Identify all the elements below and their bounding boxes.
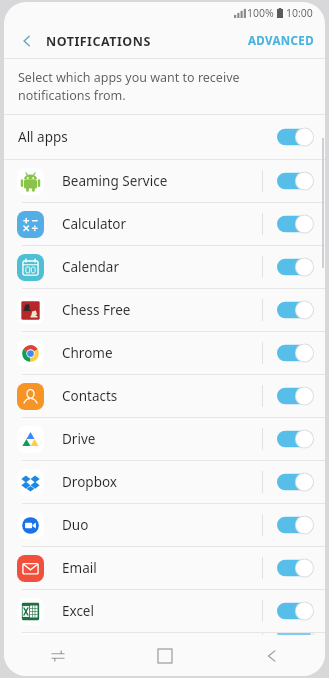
staticText: Chess Free bbox=[62, 301, 131, 319]
button[interactable]: Excel bbox=[4, 590, 325, 632]
button[interactable]: Toggle notifications bbox=[277, 299, 313, 321]
button[interactable]: Dropbox bbox=[4, 461, 325, 503]
button[interactable]: Toggle notifications bbox=[277, 600, 313, 622]
staticText: 10:00 bbox=[286, 6, 313, 20]
staticText: Duo bbox=[62, 516, 89, 534]
button[interactable]: Toggle notifications bbox=[277, 428, 313, 450]
button[interactable]: Recents bbox=[4, 635, 111, 676]
button[interactable]: Home bbox=[111, 635, 218, 676]
staticText: Beaming Service bbox=[62, 172, 168, 190]
button[interactable]: Contacts bbox=[4, 375, 325, 417]
button[interactable]: Toggle notifications bbox=[277, 342, 313, 364]
button[interactable]: Back bbox=[12, 26, 42, 56]
button[interactable]: ADVANCED bbox=[238, 27, 325, 55]
staticText: 100% bbox=[247, 6, 274, 20]
button[interactable]: Toggle notifications bbox=[277, 471, 313, 493]
button[interactable]: All apps bbox=[4, 115, 325, 159]
button[interactable]: Email bbox=[4, 547, 325, 589]
staticText: Chrome bbox=[62, 344, 113, 362]
staticText: ADVANCED bbox=[248, 33, 315, 49]
button[interactable]: Toggle notifications bbox=[277, 126, 313, 148]
button[interactable]: Toggle notifications bbox=[277, 633, 313, 635]
button[interactable]: Toggle notifications bbox=[277, 256, 313, 278]
staticText: All apps bbox=[18, 128, 68, 146]
staticText: NOTIFICATIONS bbox=[46, 33, 151, 50]
staticText: Calendar bbox=[62, 258, 119, 276]
button[interactable]: Toggle notifications bbox=[277, 514, 313, 536]
button[interactable]: Toggle notifications bbox=[277, 385, 313, 407]
staticText: Email bbox=[62, 559, 97, 577]
button[interactable]: Chess Free bbox=[4, 289, 325, 331]
staticText: Dropbox bbox=[62, 473, 117, 491]
button[interactable]: Toggle notifications bbox=[277, 170, 313, 192]
staticText: Calculator bbox=[62, 215, 127, 233]
button[interactable]: Facebook bbox=[4, 633, 325, 635]
button[interactable]: Chrome bbox=[4, 332, 325, 374]
button[interactable]: Back bbox=[218, 635, 325, 676]
button[interactable]: Calendar bbox=[4, 246, 325, 288]
staticText: Excel bbox=[62, 602, 94, 620]
staticText: Contacts bbox=[62, 387, 118, 405]
staticText: Select which apps you want to receive no… bbox=[18, 69, 240, 104]
staticText: Drive bbox=[62, 430, 96, 448]
button[interactable]: Toggle notifications bbox=[277, 557, 313, 579]
button[interactable]: Beaming Service bbox=[4, 160, 325, 202]
button[interactable]: Duo bbox=[4, 504, 325, 546]
button[interactable]: Toggle notifications bbox=[277, 213, 313, 235]
button[interactable]: Drive bbox=[4, 418, 325, 460]
button[interactable]: Calculator bbox=[4, 203, 325, 245]
